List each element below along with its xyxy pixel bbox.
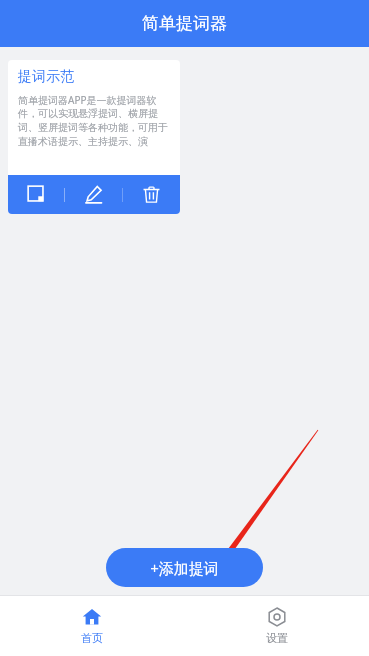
staticText: 简单提词器APP是一款提词器软件，可以实现悬浮提词、横屏提词、竖屏提词等各种功能… (18, 93, 172, 148)
staticText: 首页 (81, 631, 103, 645)
staticText: 提词示范 (18, 68, 74, 86)
staticText: 简单提词器 (142, 13, 227, 34)
button[interactable]: Copy (8, 175, 64, 214)
button[interactable]: 设置 (184, 595, 369, 656)
button[interactable]: Edit (65, 175, 122, 214)
button[interactable]: Delete (123, 175, 180, 214)
button[interactable]: +添加提词 (106, 548, 263, 587)
staticText: 设置 (266, 631, 288, 645)
button[interactable]: 首页 (0, 595, 184, 656)
staticText: +添加提词 (150, 558, 219, 578)
